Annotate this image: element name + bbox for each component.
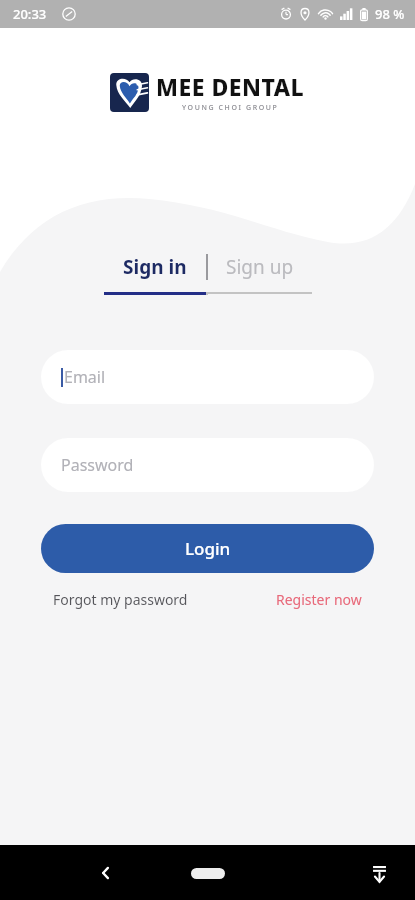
staticText: YOUNG CHOI GROUP — [182, 103, 279, 113]
button[interactable]: Email — [41, 350, 374, 404]
button[interactable]: Sign up — [208, 250, 312, 284]
button[interactable]: Back — [86, 853, 126, 893]
staticText: Forgot my password — [53, 590, 188, 609]
button[interactable]: Forgot my password — [51, 586, 190, 613]
staticText: Email — [64, 366, 106, 388]
staticText: 98 % — [375, 5, 405, 23]
button[interactable]: Sign in — [104, 250, 206, 284]
staticText: Password — [61, 454, 134, 476]
staticText: Register now — [276, 590, 362, 609]
staticText: Login — [185, 537, 231, 560]
button[interactable]: Hide keyboard — [359, 853, 399, 893]
staticText: Sign in — [123, 254, 187, 280]
button[interactable]: Login — [41, 524, 374, 573]
staticText: 20:33 — [13, 5, 47, 23]
staticText: MEE DENTAL — [156, 71, 305, 102]
staticText: Sign up — [226, 254, 294, 280]
button[interactable]: Register now — [274, 586, 364, 613]
button[interactable]: Password — [41, 438, 374, 492]
button[interactable]: Home — [178, 856, 238, 890]
